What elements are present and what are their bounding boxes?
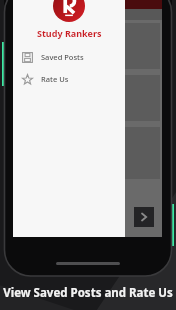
button[interactable]: 8 <box>15 23 160 69</box>
staticText: View Saved Posts and Rate Us <box>3 285 173 301</box>
staticText: Study Rankers <box>37 27 102 39</box>
button[interactable]: Next <box>134 207 154 227</box>
button[interactable]: Rate Us <box>13 68 125 90</box>
button[interactable]: Ask <box>15 127 160 179</box>
button[interactable]: Saved Posts <box>13 46 125 68</box>
staticText: Saved Posts <box>41 52 84 62</box>
staticText: Class <box>21 50 36 58</box>
button[interactable]: 11 <box>15 75 160 121</box>
staticText: Rate Us <box>41 74 69 84</box>
